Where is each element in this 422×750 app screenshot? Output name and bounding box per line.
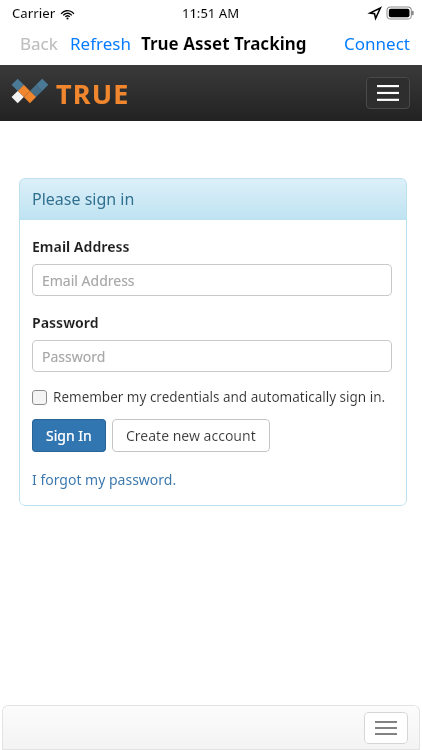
button[interactable]: Remember my credentials and automaticall… bbox=[32, 388, 386, 406]
staticText: Sign In bbox=[46, 426, 92, 445]
button[interactable]: Connect bbox=[332, 26, 422, 61]
staticText: Back bbox=[20, 32, 58, 55]
staticText: Password bbox=[32, 313, 99, 332]
staticText: Refresh bbox=[70, 32, 131, 55]
staticText: True Asset Tracking bbox=[141, 32, 307, 55]
staticText: TRUE bbox=[56, 75, 130, 112]
button[interactable]: Back bbox=[0, 26, 64, 61]
button[interactable]: Open menu bbox=[366, 77, 410, 109]
staticText: Email Address bbox=[42, 271, 135, 290]
button[interactable]: Open menu bbox=[364, 712, 408, 744]
button[interactable]: Email Address bbox=[32, 264, 392, 296]
button[interactable]: Refresh bbox=[64, 26, 137, 61]
staticText: Connect bbox=[344, 32, 410, 55]
staticText: Carrier bbox=[12, 4, 56, 22]
button[interactable]: Password bbox=[32, 340, 392, 372]
staticText: Email Address bbox=[32, 237, 130, 256]
staticText: Create new account bbox=[126, 426, 256, 445]
staticText: Please sign in bbox=[32, 188, 135, 210]
button[interactable]: Create new account bbox=[112, 419, 270, 452]
staticText: I forgot my password. bbox=[32, 470, 177, 489]
button[interactable]: TRUE bbox=[16, 75, 130, 112]
button[interactable]: I forgot my password. bbox=[32, 470, 177, 489]
staticText: 11:51 AM bbox=[182, 4, 240, 22]
button[interactable]: Sign In bbox=[32, 419, 106, 452]
staticText: Remember my credentials and automaticall… bbox=[53, 388, 386, 406]
staticText: Password bbox=[42, 347, 106, 366]
